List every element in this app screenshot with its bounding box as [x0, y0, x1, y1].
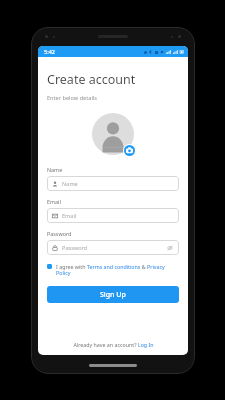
- staticText: Sign Up: [100, 290, 126, 300]
- staticText: Already have an account? Log In: [73, 341, 154, 348]
- staticText: Password: [62, 244, 88, 252]
- button[interactable]: Already have an account? Log In: [73, 341, 154, 348]
- button[interactable]: Sign Up: [47, 286, 179, 303]
- staticText: Email: [47, 198, 61, 205]
- staticText: I agree with Terms and conditions & Priv…: [56, 263, 179, 277]
- button[interactable]: Email: [47, 208, 179, 223]
- staticText: Create account: [47, 71, 136, 88]
- button[interactable]: Change profile photo: [124, 145, 135, 156]
- staticText: 5:42: [44, 48, 55, 55]
- button[interactable]: Name: [47, 176, 179, 191]
- staticText: Enter below details: [47, 94, 97, 102]
- button[interactable]: I agree with Terms and conditions & Priv…: [47, 263, 179, 277]
- staticText: Password: [47, 230, 72, 237]
- staticText: Name: [47, 166, 63, 173]
- button[interactable]: Password: [47, 240, 179, 255]
- staticText: Email: [62, 212, 77, 220]
- button[interactable]: Show password: [166, 244, 174, 252]
- staticText: Name: [62, 180, 78, 188]
